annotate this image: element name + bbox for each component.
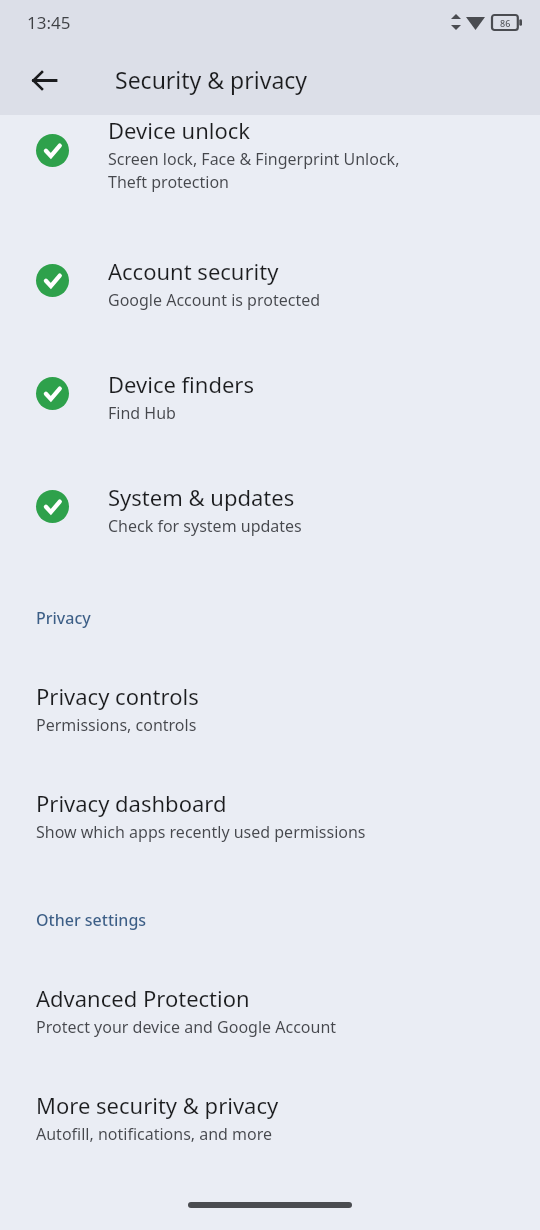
staticText: Device unlock: [108, 115, 251, 145]
button[interactable]: Back: [14, 50, 74, 110]
staticText: System & updates: [108, 482, 295, 512]
staticText: Security & privacy: [115, 64, 308, 95]
button[interactable]: Privacy dashboard: [0, 788, 540, 843]
staticText: 86: [500, 17, 511, 29]
staticText: More security & privacy: [36, 1090, 279, 1120]
staticText: Check for system updates: [108, 515, 302, 537]
staticText: Google Account is protected: [108, 289, 321, 311]
staticText: Account security: [108, 256, 279, 286]
staticText: Permissions, controls: [36, 714, 197, 736]
staticText: Privacy dashboard: [36, 788, 227, 818]
staticText: Privacy: [36, 607, 91, 629]
button[interactable]: Privacy controls: [0, 681, 540, 736]
button[interactable]: Device unlock: [0, 115, 540, 193]
staticText: Find Hub: [108, 402, 176, 424]
staticText: Screen lock, Face & Fingerprint Unlock, …: [108, 148, 400, 193]
button[interactable]: Advanced Protection: [0, 983, 540, 1038]
staticText: Show which apps recently used permission…: [36, 821, 366, 843]
staticText: Autofill, notifications, and more: [36, 1123, 273, 1145]
button[interactable]: Device finders: [0, 369, 540, 424]
staticText: Protect your device and Google Account: [36, 1016, 337, 1038]
button[interactable]: More security & privacy: [0, 1090, 540, 1145]
staticText: Other settings: [36, 909, 147, 931]
button[interactable]: System & updates: [0, 482, 540, 537]
staticText: Advanced Protection: [36, 983, 250, 1013]
staticText: Privacy controls: [36, 681, 199, 711]
staticText: 13:45: [27, 11, 71, 34]
button[interactable]: Account security: [0, 256, 540, 311]
staticText: Device finders: [108, 369, 254, 399]
